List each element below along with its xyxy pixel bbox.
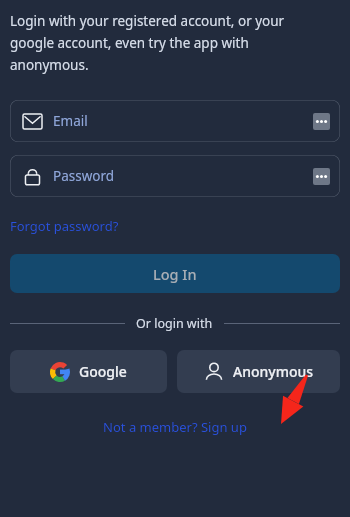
button[interactable]: Not a member? Sign up — [103, 418, 247, 436]
staticText: Password — [53, 167, 115, 185]
button[interactable]: More options — [313, 113, 330, 130]
button[interactable]: Anonymous — [177, 350, 340, 393]
button[interactable]: Forgot password? — [10, 217, 119, 235]
staticText: Anonymous — [233, 362, 314, 381]
button[interactable]: Email — [10, 100, 340, 142]
staticText: Not a member? Sign up — [103, 418, 247, 436]
staticText: Or login with — [136, 315, 213, 332]
button[interactable]: More options — [313, 168, 330, 185]
button[interactable]: Log In — [10, 254, 340, 293]
button[interactable]: Google — [10, 350, 167, 393]
staticText: Login with your registered account, or y… — [10, 12, 324, 74]
button[interactable]: Password — [10, 155, 340, 197]
staticText: Email — [53, 112, 88, 130]
staticText: Log In — [153, 264, 197, 284]
staticText: Google — [79, 362, 127, 381]
staticText: Forgot password? — [10, 217, 119, 235]
